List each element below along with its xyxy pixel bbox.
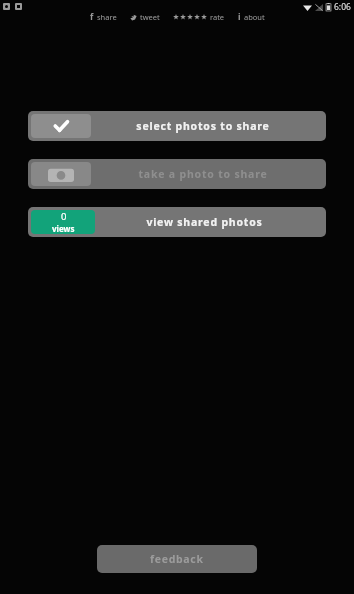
button[interactable]: Selected <box>28 111 326 141</box>
button[interactable]: 0 <box>28 207 326 237</box>
other: Selected <box>52 117 70 135</box>
button[interactable]: tweet <box>127 12 163 22</box>
staticText: rate <box>210 12 225 22</box>
button[interactable]: rate <box>170 12 228 22</box>
staticText: 6:06 <box>334 1 351 13</box>
other: Camera <box>48 167 74 182</box>
button[interactable]: f <box>87 11 120 23</box>
staticText: view shared photos <box>146 215 263 229</box>
staticText: select photos to share <box>136 119 270 133</box>
staticText: tweet <box>140 12 160 22</box>
staticText: 0 <box>61 210 67 223</box>
staticText: views <box>52 223 75 234</box>
button[interactable]: Camera <box>28 159 326 189</box>
staticText: i <box>238 11 241 23</box>
staticText: about <box>244 12 265 22</box>
staticText: feedback <box>150 552 204 566</box>
staticText: take a photo to share <box>138 167 268 181</box>
button[interactable]: feedback <box>97 545 257 573</box>
staticText: share <box>97 12 117 22</box>
button[interactable]: i <box>235 11 268 23</box>
staticText: f <box>90 11 94 23</box>
